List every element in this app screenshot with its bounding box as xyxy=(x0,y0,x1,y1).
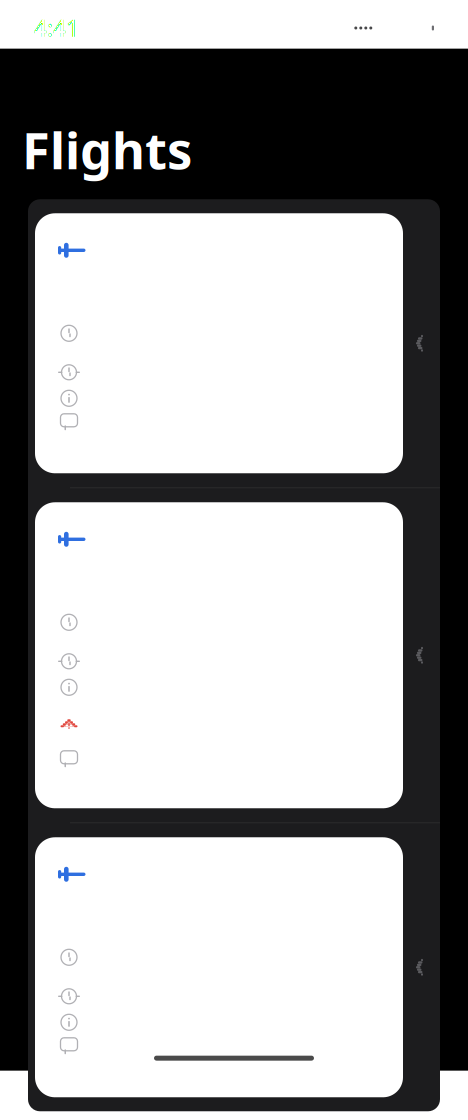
staticText: 4:41 xyxy=(34,13,79,43)
staticText: Flights xyxy=(22,116,192,183)
button[interactable]: Flight details xyxy=(28,488,440,822)
button[interactable]: Flight details xyxy=(28,199,440,487)
button[interactable]: Flight details xyxy=(28,823,440,1111)
